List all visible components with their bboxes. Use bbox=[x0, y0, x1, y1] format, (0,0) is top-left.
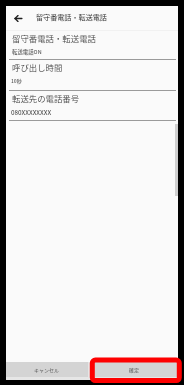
staticText: 転送先の電話番号 bbox=[12, 92, 80, 104]
staticText: 留守番電話・転送電話 bbox=[36, 12, 107, 22]
staticText: 留守番電話・転送電話 bbox=[12, 32, 96, 44]
button[interactable] bbox=[6, 60, 178, 91]
staticText: 10秒 bbox=[11, 77, 22, 84]
button[interactable] bbox=[6, 28, 178, 59]
staticText: 転送電話ON bbox=[12, 48, 42, 56]
staticText: 確定 bbox=[129, 366, 140, 373]
staticText: 080XXXXXXXX bbox=[11, 108, 52, 117]
button[interactable] bbox=[6, 91, 178, 121]
button[interactable]: 確定 bbox=[90, 362, 178, 377]
button[interactable]: Back bbox=[7, 7, 29, 29]
staticText: 呼び出し時間 bbox=[12, 61, 63, 73]
button[interactable]: キャンセル bbox=[6, 362, 88, 377]
staticText: キャンセル bbox=[34, 366, 60, 373]
